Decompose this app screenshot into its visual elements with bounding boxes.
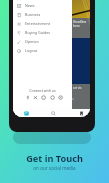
button[interactable]: Twitter bbox=[33, 95, 38, 100]
button[interactable]: Logout bbox=[13, 46, 72, 55]
button[interactable]: YouTube bbox=[50, 95, 55, 100]
button[interactable]: Opinion bbox=[13, 37, 72, 46]
button[interactable]: Home bbox=[17, 109, 35, 117]
staticText: Logout bbox=[25, 48, 38, 53]
staticText: Buying Guides bbox=[25, 30, 51, 35]
staticText: Get in Touch bbox=[26, 152, 83, 165]
staticText: Connect with us bbox=[13, 88, 72, 93]
staticText: Entertainment bbox=[25, 21, 51, 26]
button[interactable]: Facebook bbox=[25, 95, 30, 100]
staticText: Business bbox=[25, 12, 41, 17]
button[interactable]: Buying Guides bbox=[13, 28, 72, 37]
staticText: art vis bbox=[73, 86, 82, 90]
staticText: Headline here bbox=[73, 20, 90, 28]
button[interactable]: Business bbox=[13, 10, 72, 19]
button[interactable]: Search bbox=[44, 109, 62, 117]
staticText: on our social media bbox=[33, 165, 76, 171]
staticText: News bbox=[25, 3, 35, 8]
button[interactable]: News bbox=[13, 1, 72, 10]
button[interactable]: Instagram bbox=[41, 95, 46, 100]
button[interactable]: Entertainment bbox=[13, 19, 72, 28]
button[interactable]: Saved bbox=[72, 109, 90, 117]
staticText: Opinion bbox=[25, 39, 39, 44]
button[interactable]: LinkedIn bbox=[58, 95, 63, 100]
